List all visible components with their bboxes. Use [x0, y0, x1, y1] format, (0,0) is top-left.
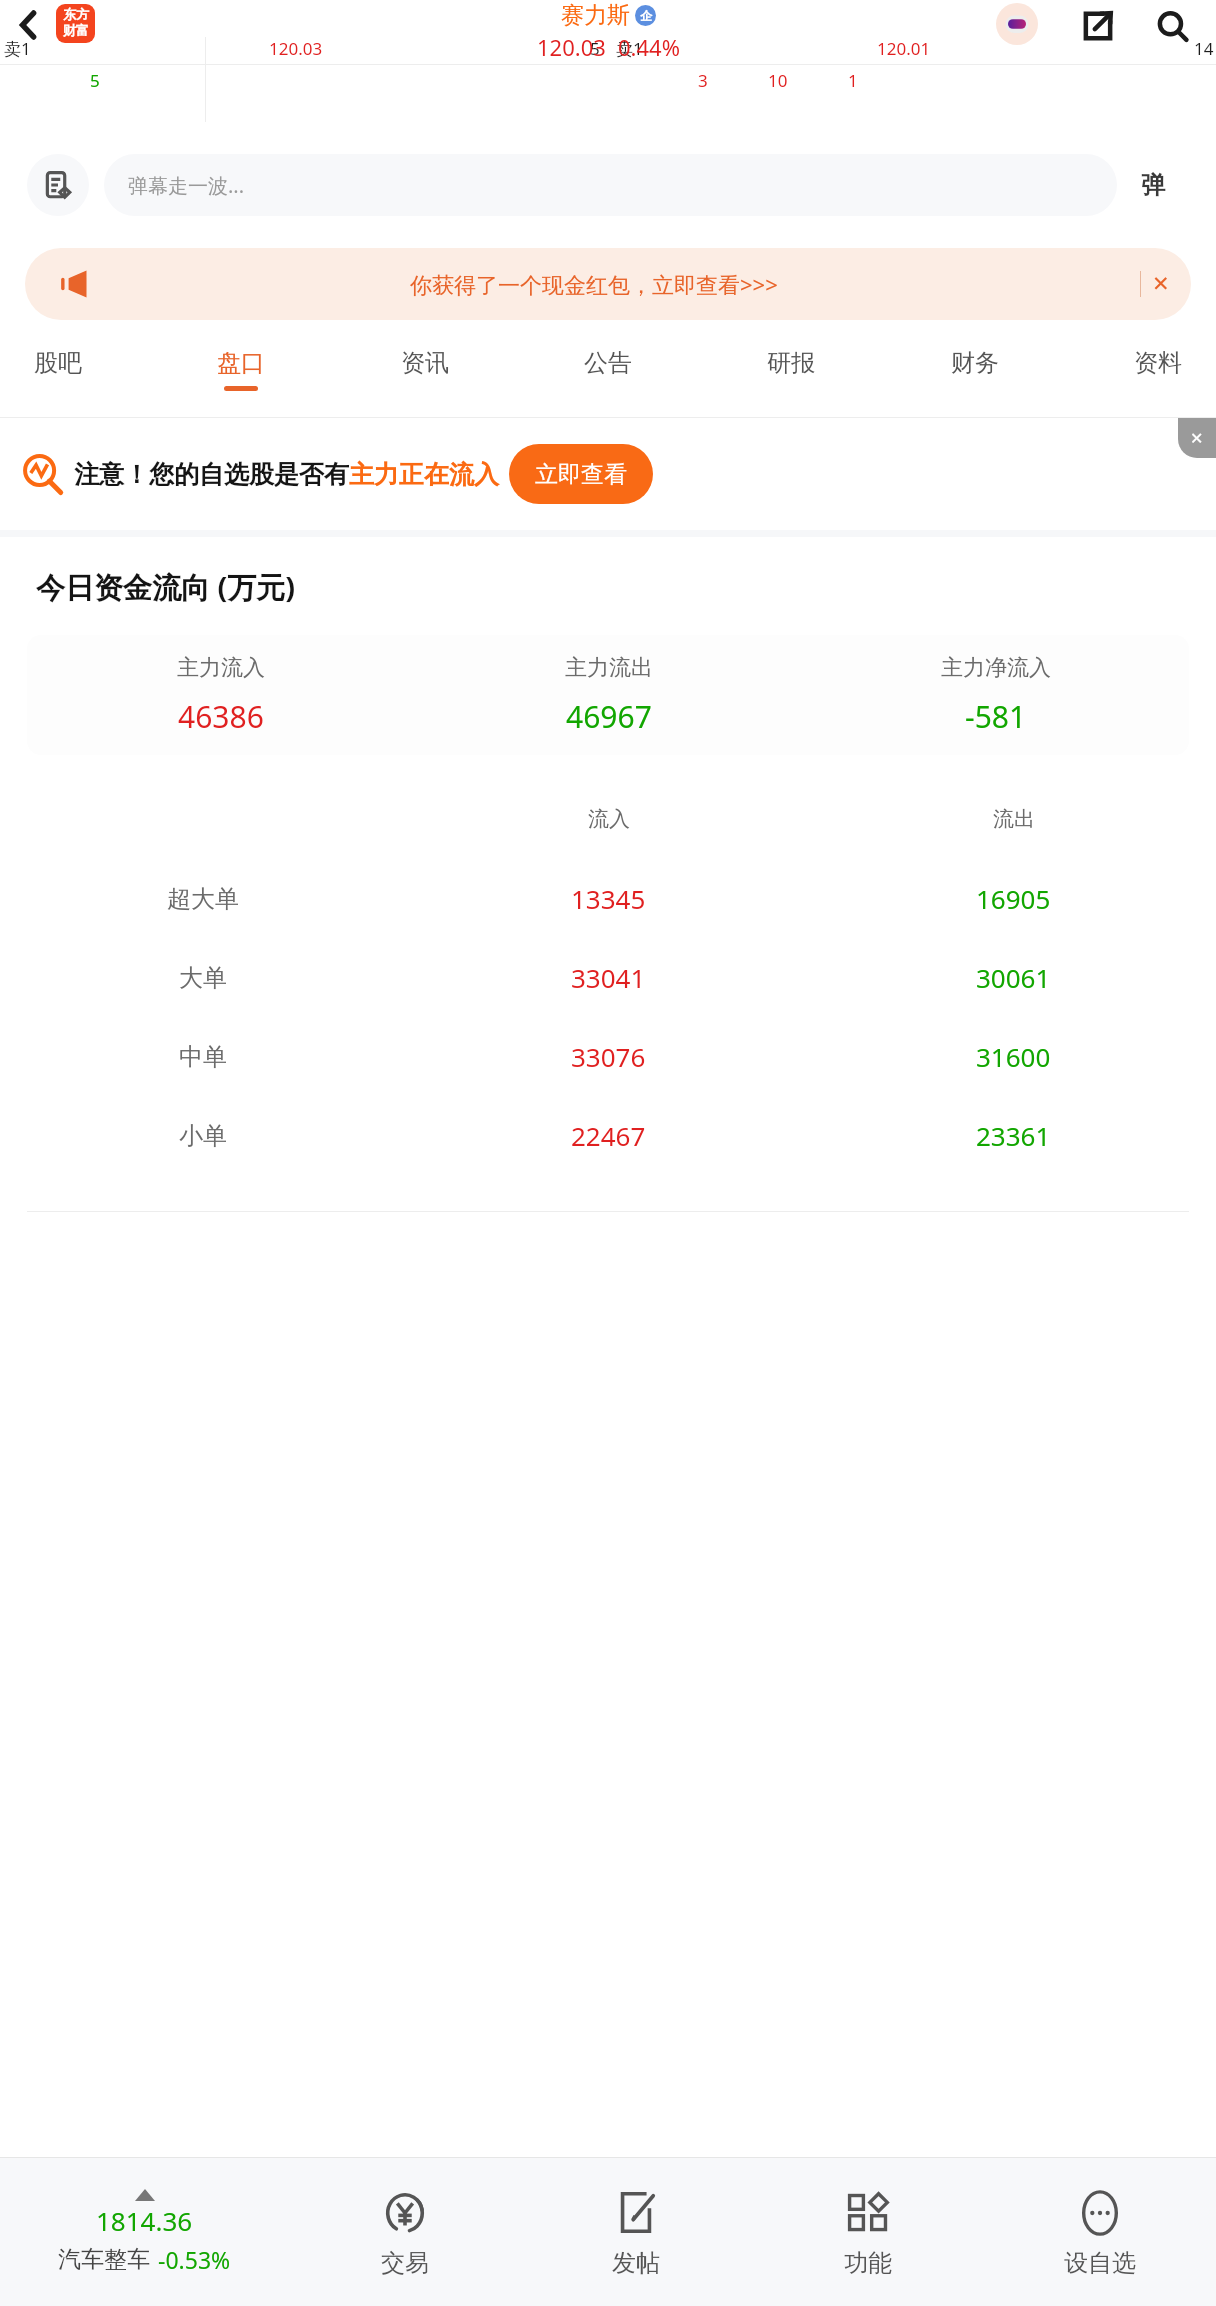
- staticText: 卖1: [616, 37, 643, 60]
- button[interactable]: 资讯: [391, 342, 459, 397]
- staticText: 公告: [584, 348, 632, 378]
- staticText: 财务: [951, 348, 999, 378]
- staticText: 120.01: [877, 37, 931, 60]
- button[interactable]: Close: [1141, 264, 1181, 304]
- staticText: 发帖: [612, 2248, 660, 2278]
- staticText: 汽车整车: [58, 2245, 150, 2274]
- button[interactable]: East Money: [56, 4, 95, 43]
- button[interactable]: 交易: [289, 2158, 520, 2306]
- staticText: 超大单: [167, 884, 239, 914]
- staticText: 主力流入: [177, 654, 265, 682]
- staticText: 流出: [993, 806, 1035, 832]
- button[interactable]: Danmaku settings: [27, 154, 89, 216]
- staticText: 资讯: [401, 348, 449, 378]
- staticText: 财富: [63, 22, 89, 38]
- staticText: 大单: [179, 963, 227, 993]
- staticText: 弹幕走一波...: [128, 172, 245, 199]
- staticText: 交易: [381, 2248, 429, 2278]
- button[interactable]: 功能: [752, 2158, 984, 2306]
- staticText: ✕: [1190, 429, 1204, 448]
- staticText: 立即查看: [535, 460, 627, 489]
- staticText: 1814.36: [96, 2203, 193, 2238]
- button[interactable]: Back: [6, 2, 52, 48]
- staticText: 120.03: [537, 32, 606, 62]
- staticText: 3: [698, 69, 708, 92]
- staticText: 33076: [571, 1039, 646, 1074]
- button[interactable]: 公告: [574, 342, 642, 397]
- staticText: 33041: [571, 960, 646, 995]
- staticText: 设自选: [1064, 2248, 1136, 2278]
- staticText: 120.03: [269, 37, 323, 60]
- staticText: 主力净流入: [941, 654, 1051, 682]
- button[interactable]: AI assistant: [996, 3, 1038, 45]
- staticText: 30061: [976, 960, 1051, 995]
- staticText: 10: [768, 69, 788, 92]
- staticText: 你获得了一个现金红包，立即查看>>>: [410, 269, 778, 299]
- staticText: 16905: [976, 881, 1051, 916]
- button[interactable]: Close ad: [1178, 418, 1216, 458]
- button[interactable]: 立即查看: [509, 444, 653, 504]
- staticText: 赛力斯: [561, 1, 630, 30]
- button[interactable]: 财务: [941, 342, 1009, 397]
- button[interactable]: 你获得了一个现金红包，立即查看>>>: [25, 248, 1191, 320]
- button[interactable]: Share: [1078, 6, 1118, 46]
- staticText: 中单: [179, 1042, 227, 1072]
- staticText: 企: [640, 8, 652, 23]
- staticText: 13345: [571, 881, 646, 916]
- staticText: 主力正在流入: [349, 459, 499, 490]
- staticText: 5: [90, 69, 100, 92]
- staticText: 功能: [844, 2248, 892, 2278]
- staticText: -581: [965, 696, 1027, 737]
- staticText: 流入: [588, 806, 630, 832]
- staticText: 小单: [179, 1121, 227, 1151]
- button[interactable]: 主力流入: [27, 635, 1189, 755]
- staticText: 股吧: [34, 348, 82, 378]
- staticText: 资料: [1134, 348, 1182, 378]
- button[interactable]: 股吧: [24, 342, 92, 397]
- staticText: 东方: [63, 6, 89, 22]
- button[interactable]: 资料: [1124, 342, 1192, 397]
- staticText: 卖1: [4, 37, 31, 60]
- staticText: 23361: [976, 1118, 1051, 1153]
- staticText: 盘口: [217, 348, 265, 378]
- staticText: 0.44%: [618, 32, 680, 62]
- staticText: 5: [590, 37, 600, 60]
- button[interactable]: 盘口: [207, 342, 275, 397]
- button[interactable]: Search: [1152, 6, 1194, 48]
- staticText: 弹: [1141, 170, 1165, 200]
- staticText: 14: [1194, 37, 1214, 60]
- staticText: 46386: [178, 696, 264, 737]
- staticText: 研报: [767, 348, 815, 378]
- button[interactable]: Send danmaku: [1117, 154, 1189, 216]
- staticText: 46967: [566, 696, 652, 737]
- button[interactable]: 发帖: [520, 2158, 752, 2306]
- staticText: -0.53%: [158, 2244, 231, 2275]
- staticText: 22467: [571, 1118, 646, 1153]
- staticText: 主力流出: [565, 654, 653, 682]
- staticText: ✕: [1152, 272, 1170, 296]
- button[interactable]: 设自选: [984, 2158, 1216, 2306]
- button[interactable]: 研报: [757, 342, 825, 397]
- staticText: 1: [848, 69, 858, 92]
- staticText: 注意！您的自选股是否有: [74, 459, 349, 490]
- button[interactable]: 弹幕走一波...: [104, 154, 1117, 216]
- staticText: 今日资金流向 (万元): [36, 567, 296, 607]
- staticText: 31600: [976, 1039, 1051, 1074]
- button[interactable]: 1814.36: [0, 2158, 289, 2306]
